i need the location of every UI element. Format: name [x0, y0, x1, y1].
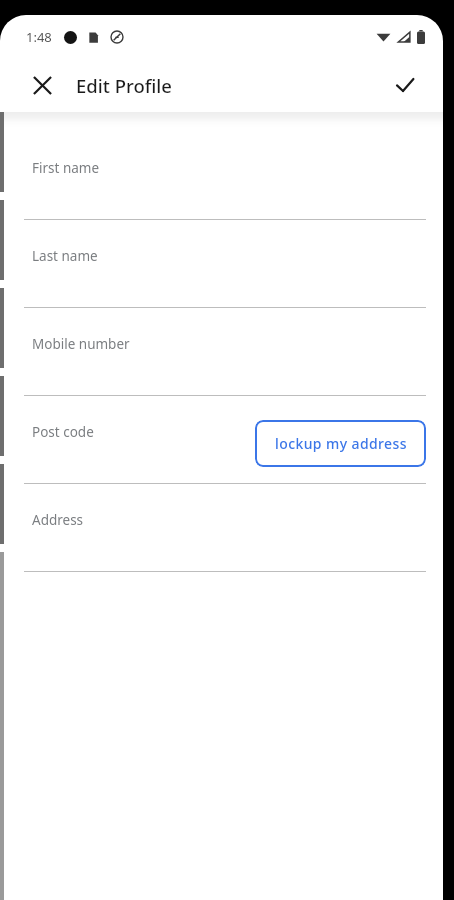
staticText: Last name	[32, 247, 98, 265]
button[interactable]: Save	[383, 63, 427, 107]
button[interactable]: Last name	[0, 220, 443, 308]
staticText: Edit Profile	[76, 73, 172, 98]
staticText: Mobile number	[32, 335, 130, 353]
staticText: 1:48	[26, 28, 52, 46]
button[interactable]: Address	[0, 484, 443, 572]
staticText: First name	[32, 159, 100, 177]
button[interactable]: First name	[0, 132, 443, 220]
staticText: Address	[32, 511, 84, 529]
staticText: lockup my address	[275, 434, 407, 453]
button[interactable]: lockup my address	[255, 420, 426, 467]
button[interactable]: Mobile number	[0, 308, 443, 396]
button[interactable]: Close	[20, 63, 64, 107]
staticText: Post code	[32, 423, 94, 441]
